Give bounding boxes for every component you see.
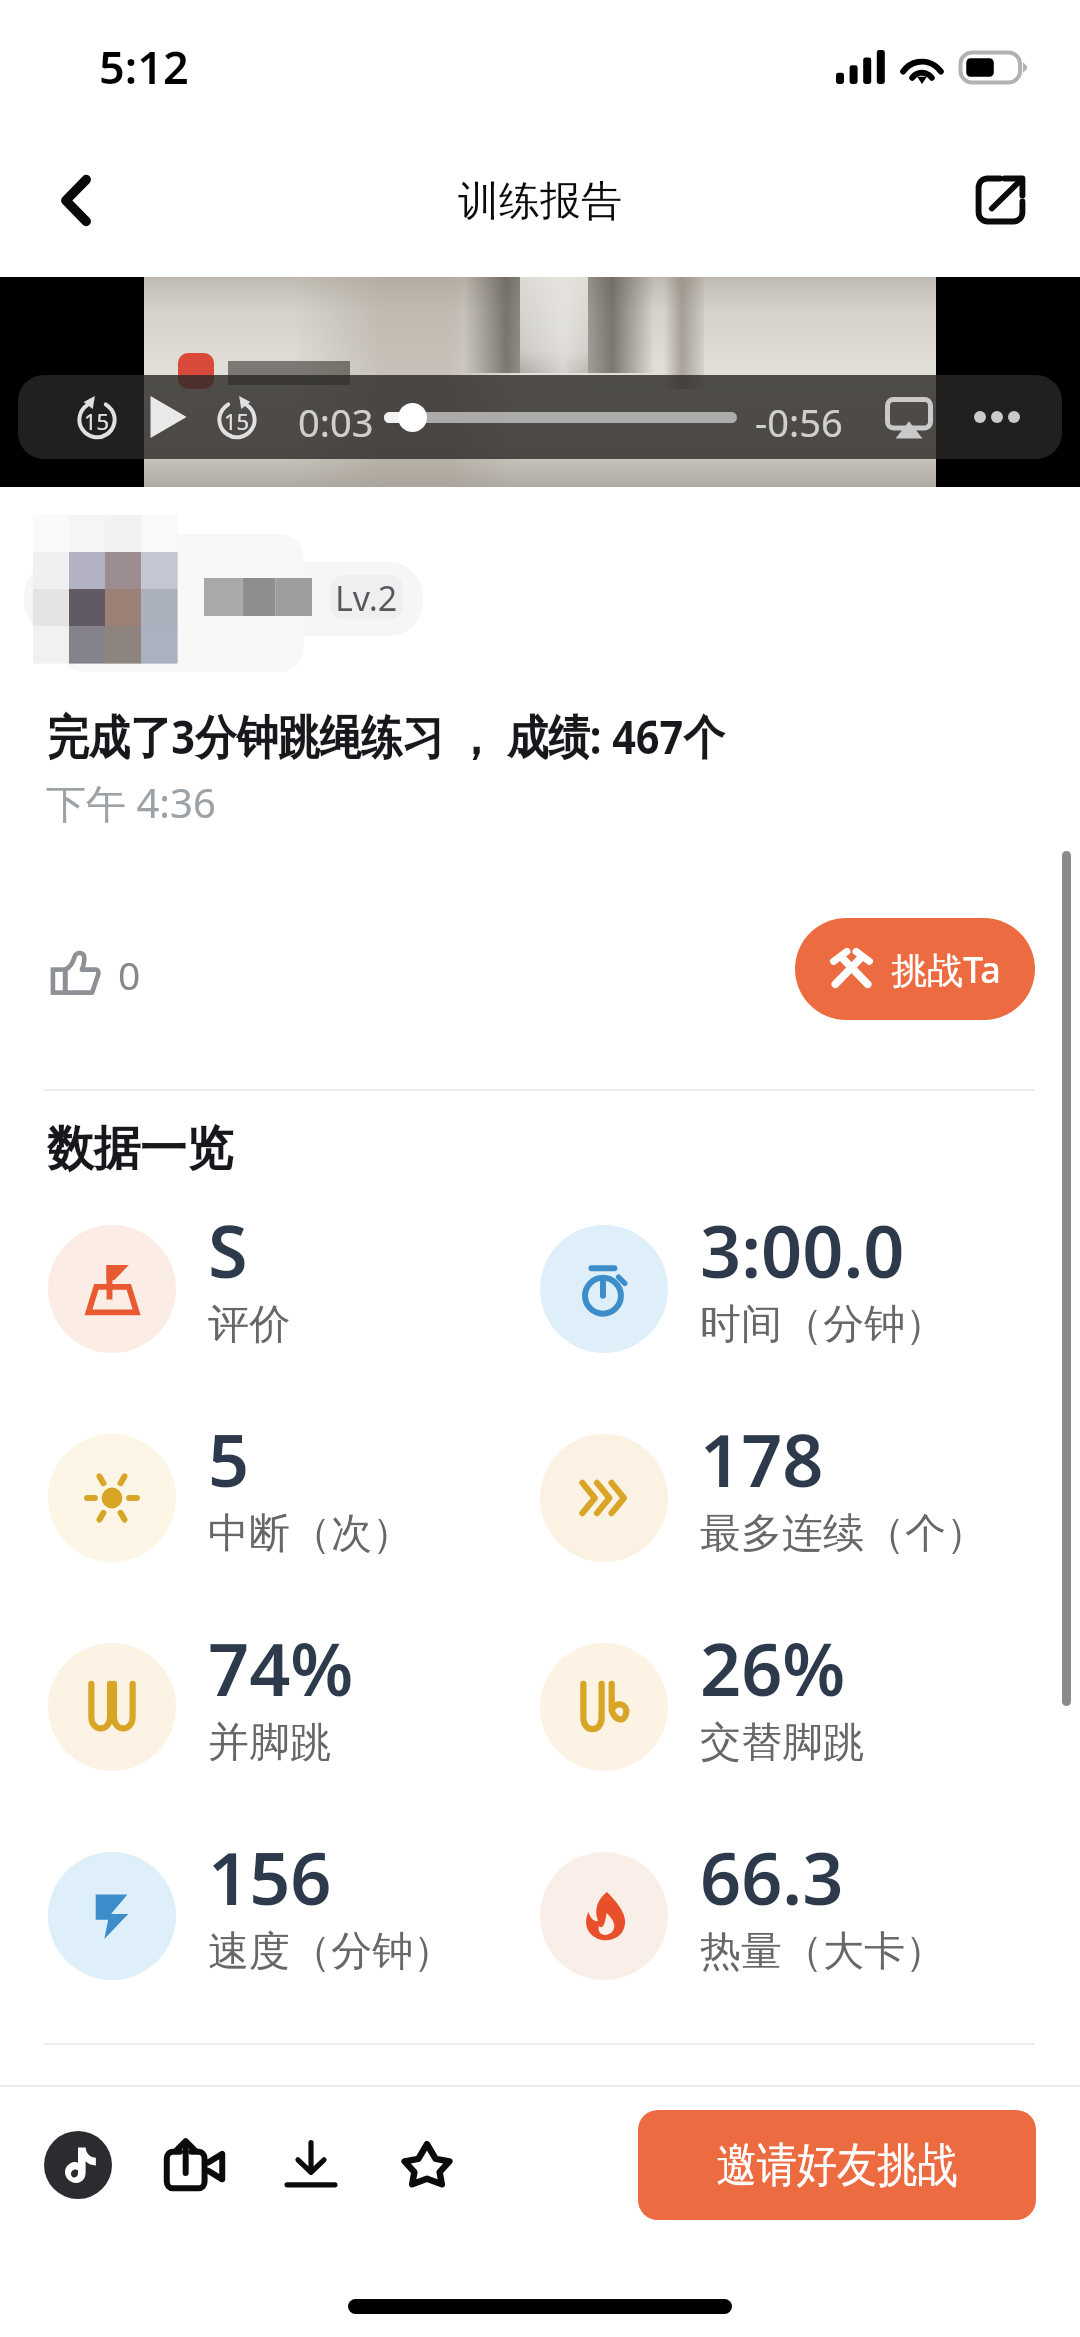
button[interactable]: More options bbox=[964, 397, 1030, 437]
staticText: S bbox=[208, 1201, 248, 1299]
staticText: 0:03 bbox=[298, 396, 374, 448]
staticText: Lv.2 bbox=[335, 575, 398, 619]
staticText: 时间（分钟） bbox=[700, 1299, 946, 1351]
button[interactable]: Forward 15 seconds bbox=[215, 395, 259, 439]
staticText: 5:12 bbox=[99, 36, 189, 97]
staticText: 训练报告 bbox=[458, 176, 622, 228]
staticText: -0:56 bbox=[755, 396, 843, 448]
staticText: 74% bbox=[208, 1619, 354, 1717]
staticText: 26% bbox=[700, 1619, 846, 1717]
staticText: 66.3 bbox=[700, 1828, 844, 1926]
button[interactable]: 0 bbox=[40, 941, 141, 1007]
button[interactable]: 邀请好友挑战 bbox=[638, 2110, 1036, 2220]
staticText: 178 bbox=[700, 1410, 824, 1508]
button[interactable]: Share video bbox=[155, 2125, 233, 2203]
staticText: 并脚跳 bbox=[208, 1717, 331, 1769]
staticText: 下午 4:36 bbox=[46, 775, 216, 830]
button[interactable]: Play bbox=[136, 389, 192, 445]
staticText: 最多连续（个） bbox=[700, 1508, 987, 1560]
staticText: 0 bbox=[118, 948, 141, 1001]
staticText: 156 bbox=[208, 1828, 332, 1926]
staticText: 15 bbox=[224, 406, 250, 436]
button[interactable]: AirPlay bbox=[885, 397, 933, 439]
staticText: 5 bbox=[208, 1410, 250, 1508]
button[interactable]: Download bbox=[272, 2125, 350, 2203]
staticText: 数据一览 bbox=[47, 1119, 233, 1179]
button[interactable]: Back bbox=[26, 150, 126, 250]
staticText: 挑战Ta bbox=[891, 945, 1001, 994]
button[interactable]: 挑战Ta bbox=[795, 918, 1035, 1020]
button[interactable]: Share bbox=[950, 150, 1050, 250]
staticText: 速度（分钟） bbox=[208, 1926, 454, 1978]
staticText: 3:00.0 bbox=[700, 1201, 905, 1299]
button[interactable]: Back 15 seconds bbox=[75, 395, 119, 439]
staticText: 交替脚跳 bbox=[700, 1717, 864, 1769]
staticText: 热量（大卡） bbox=[700, 1926, 946, 1978]
staticText: 评价 bbox=[208, 1299, 290, 1351]
staticText: 邀请好友挑战 bbox=[716, 2136, 957, 2195]
staticText: 15 bbox=[84, 406, 110, 436]
button[interactable]: Favourite bbox=[388, 2125, 466, 2203]
staticText: 完成了3分钟跳绳练习 ， 成绩: 467个 bbox=[47, 704, 725, 768]
staticText: 中断（次） bbox=[208, 1508, 413, 1560]
button[interactable]: Douyin bbox=[44, 2131, 112, 2199]
